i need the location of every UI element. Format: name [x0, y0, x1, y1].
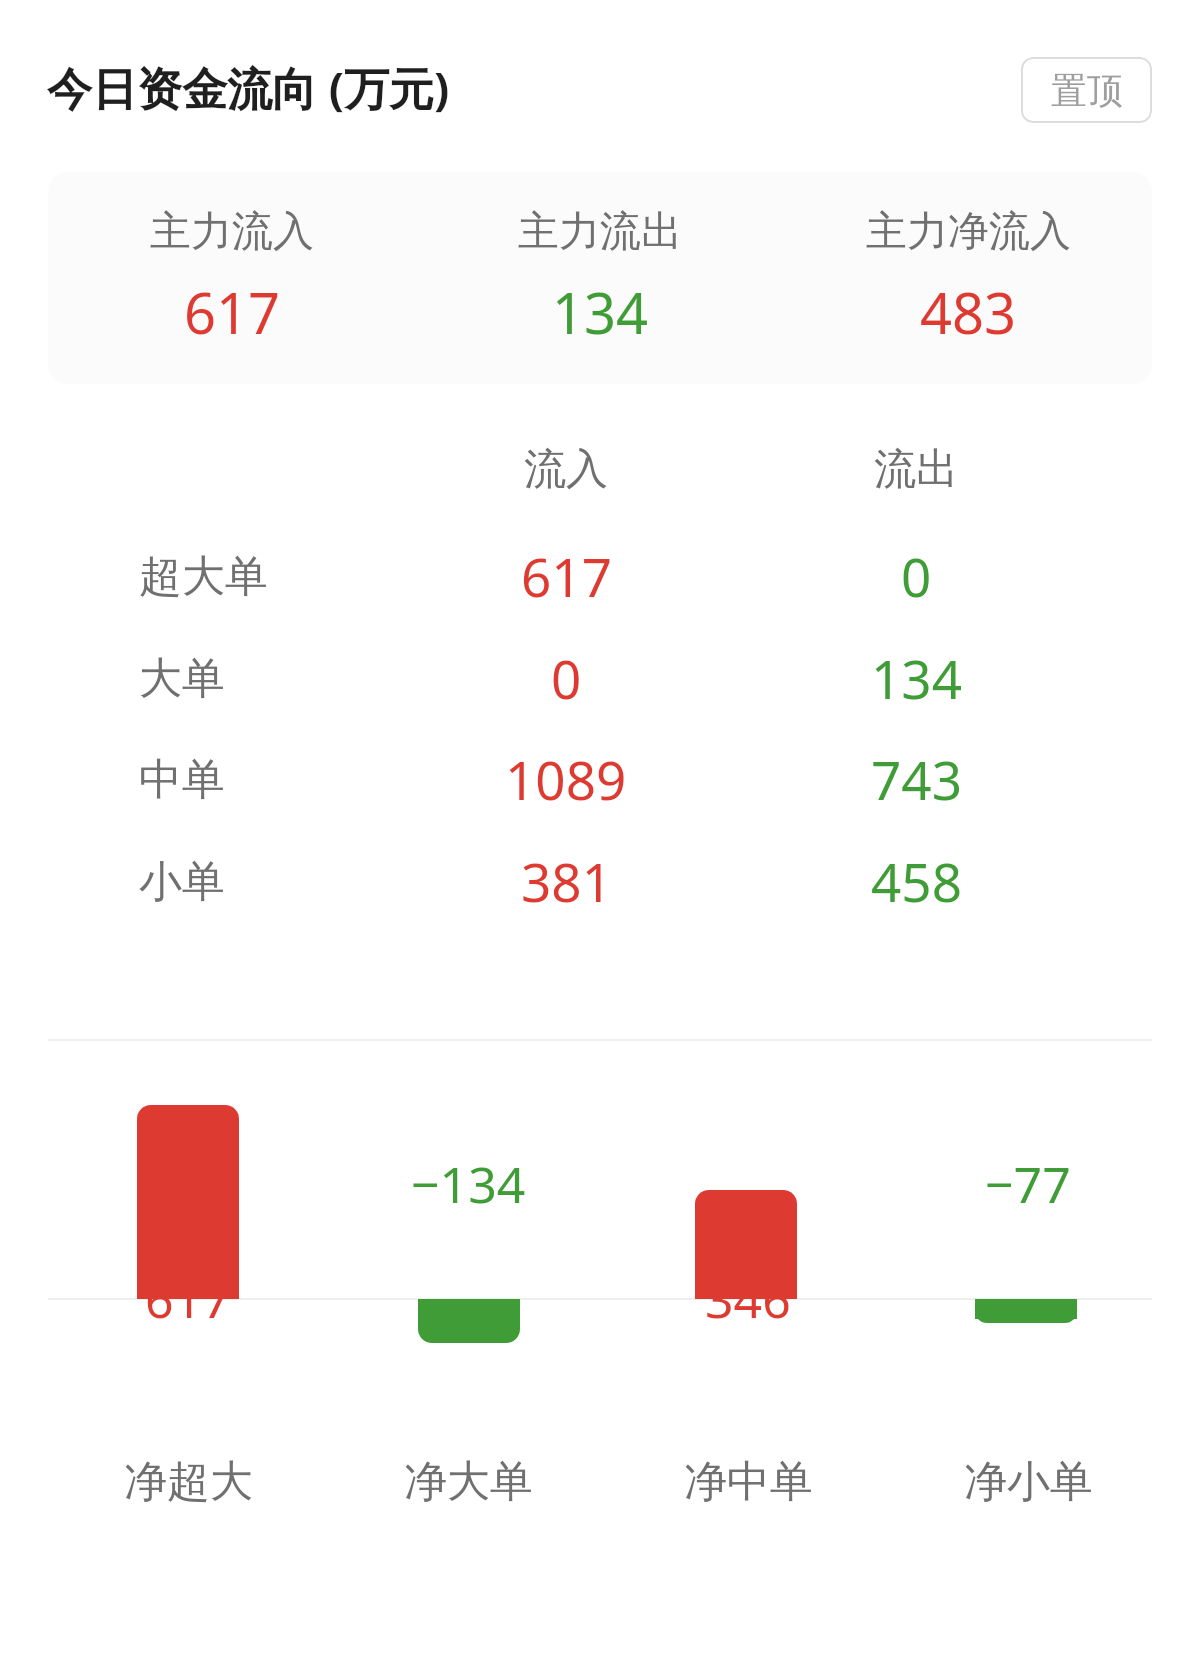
staticText: 0 [901, 540, 932, 612]
staticText: 净中单 [684, 1455, 813, 1509]
staticText: 483 [920, 274, 1017, 350]
staticText: 346 [705, 1265, 791, 1333]
button[interactable] [48, 833, 1152, 929]
staticText: 458 [871, 845, 962, 917]
staticText: 617 [145, 1265, 231, 1333]
staticText: 617 [184, 274, 281, 350]
staticText: 小单 [139, 855, 225, 909]
staticText: 置顶 [1051, 68, 1123, 113]
staticText: 134 [871, 642, 962, 714]
button[interactable] [48, 528, 1152, 624]
staticText: 超大单 [139, 550, 268, 604]
staticText: 617 [521, 540, 612, 612]
staticText: 743 [871, 743, 962, 815]
staticText: 净小单 [964, 1455, 1093, 1509]
staticText: 中单 [139, 753, 225, 807]
staticText: 主力流入 [150, 206, 314, 258]
staticText: 净超大 [124, 1455, 253, 1509]
staticText: −134 [411, 1150, 526, 1218]
staticText: 流出 [874, 443, 958, 496]
staticText: 主力净流入 [866, 206, 1071, 258]
staticText: 今日资金流向 (万元) [47, 57, 450, 118]
staticText: 1089 [505, 743, 627, 815]
staticText: 134 [552, 274, 649, 350]
staticText: 大单 [139, 652, 225, 706]
staticText: 净大单 [404, 1455, 533, 1509]
button[interactable]: 主力流入 [48, 172, 1152, 384]
staticText: 主力流出 [518, 206, 682, 258]
button[interactable] [48, 630, 1152, 726]
staticText: 0 [551, 642, 582, 714]
staticText: 流入 [524, 443, 608, 496]
staticText: −77 [985, 1150, 1071, 1218]
button[interactable] [48, 731, 1152, 827]
button[interactable]: 置顶 [1021, 57, 1152, 123]
staticText: 381 [521, 845, 612, 917]
